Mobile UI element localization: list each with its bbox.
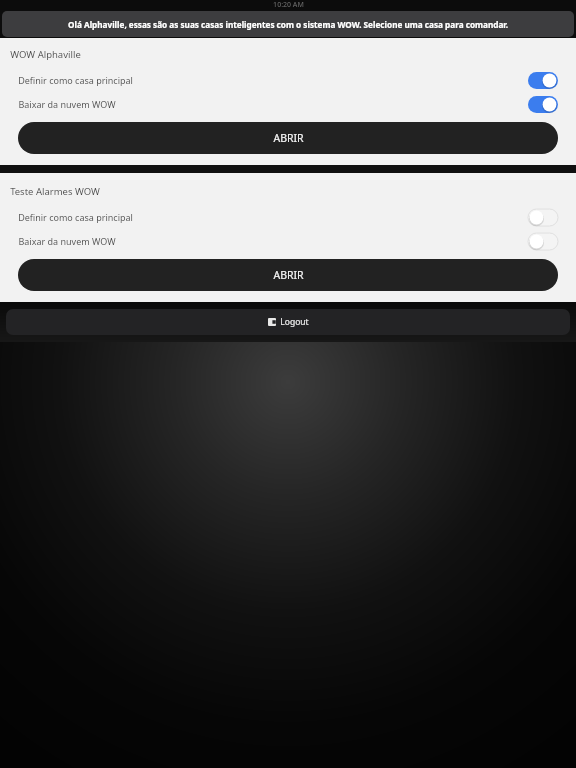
other: Ligado	[528, 96, 558, 113]
button[interactable]: Baixar da nuvem WOW	[0, 232, 576, 250]
staticText: ABRIR	[273, 131, 304, 145]
other: Desligado	[528, 233, 558, 250]
button[interactable]: Definir como casa principal	[0, 208, 576, 226]
button[interactable]: ABRIR	[18, 259, 558, 291]
button[interactable]: Baixar da nuvem WOW	[0, 95, 576, 113]
other: Logout	[268, 318, 276, 326]
staticText: Teste Alarmes WOW	[10, 185, 100, 198]
staticText: WOW Alphaville	[10, 48, 81, 61]
staticText: Logout	[280, 316, 309, 328]
button[interactable]: Logout	[6, 309, 570, 335]
staticText: Baixar da nuvem WOW	[18, 235, 116, 247]
button[interactable]: Olá Alphaville, essas são as suas casas …	[2, 11, 574, 37]
button[interactable]: ABRIR	[18, 122, 558, 154]
other: Desligado	[528, 209, 558, 226]
staticText: ABRIR	[273, 268, 304, 282]
staticText: Baixar da nuvem WOW	[18, 98, 116, 110]
staticText: 10:20 AM	[273, 0, 304, 10]
button[interactable]: Definir como casa principal	[0, 71, 576, 89]
staticText: Definir como casa principal	[18, 74, 133, 86]
staticText: Olá Alphaville, essas são as suas casas …	[68, 19, 508, 30]
staticText: Definir como casa principal	[18, 211, 133, 223]
other: Ligado	[528, 72, 558, 89]
